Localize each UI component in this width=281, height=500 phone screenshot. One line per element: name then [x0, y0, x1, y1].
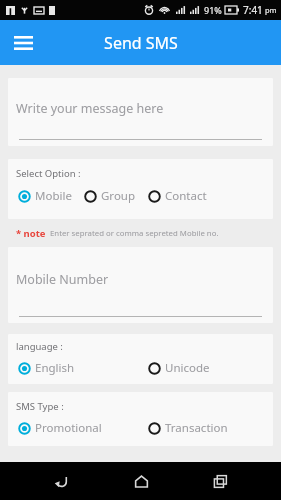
staticText: Send SMS: [104, 32, 178, 54]
button[interactable]: Unicode: [146, 358, 212, 378]
button[interactable]: language :: [8, 334, 273, 384]
staticText: Enter seprated or comma sepreted Mobile …: [50, 228, 219, 239]
staticText: Promotional: [35, 420, 102, 436]
staticText: 91%: [204, 4, 222, 16]
staticText: SMS Type :: [16, 400, 64, 413]
staticText: Contact: [165, 188, 207, 204]
staticText: Select Option :: [16, 167, 81, 180]
button[interactable]: English: [16, 358, 77, 378]
staticText: language :: [16, 340, 63, 353]
button[interactable]: Mobile: [16, 186, 74, 206]
button[interactable]: Back: [42, 462, 80, 500]
button[interactable]: Promotional: [16, 418, 104, 438]
button[interactable]: Transaction: [146, 418, 230, 438]
staticText: pm: [265, 5, 277, 15]
staticText: Write your message here: [16, 100, 164, 117]
staticText: English: [35, 360, 75, 376]
button[interactable]: Contact: [146, 186, 209, 206]
staticText: * note: [16, 227, 46, 240]
staticText: Unicode: [165, 360, 210, 376]
button[interactable]: Recent apps: [201, 462, 239, 500]
button[interactable]: Write your message here: [8, 78, 273, 146]
button[interactable]: Mobile Number: [8, 247, 273, 323]
button[interactable]: Select Option :: [8, 159, 273, 219]
staticText: Group: [101, 188, 136, 204]
staticText: Transaction: [165, 420, 228, 436]
button[interactable]: SMS Type :: [8, 392, 273, 446]
button[interactable]: Open navigation menu: [8, 28, 38, 58]
staticText: Mobile Number: [16, 271, 109, 288]
button[interactable]: Home: [122, 462, 160, 500]
staticText: 7:41: [243, 3, 263, 17]
button[interactable]: Group: [82, 186, 138, 206]
staticText: Mobile: [35, 188, 72, 204]
